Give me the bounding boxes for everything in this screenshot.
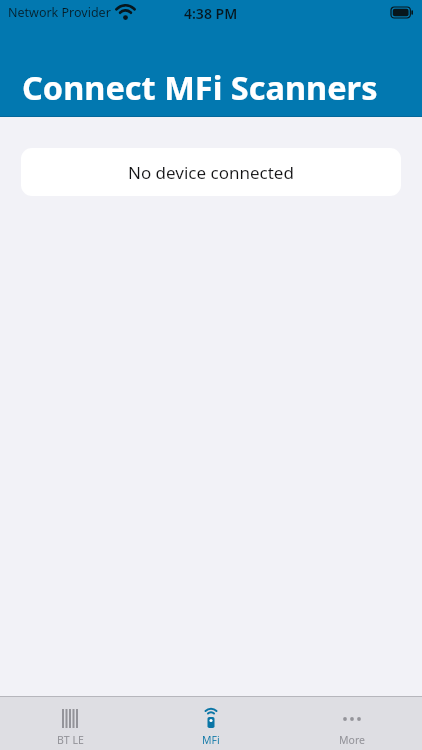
staticText: 4:38 PM xyxy=(184,4,238,23)
staticText: Network Provider xyxy=(8,4,111,21)
button[interactable]: BT LE xyxy=(0,697,140,750)
staticText: Connect MFi Scanners xyxy=(22,65,378,109)
staticText: More xyxy=(339,733,365,747)
button[interactable]: MFi xyxy=(140,697,281,750)
button[interactable]: No device connected xyxy=(21,148,401,196)
staticText: BT LE xyxy=(57,733,84,747)
button[interactable]: More xyxy=(281,697,422,750)
staticText: MFi xyxy=(202,733,220,747)
staticText: No device connected xyxy=(128,161,294,184)
